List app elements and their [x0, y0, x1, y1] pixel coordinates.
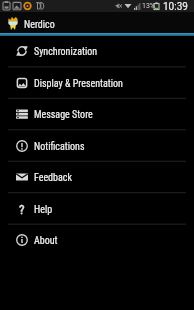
staticText: Synchronization	[34, 46, 98, 58]
staticText: ?	[19, 202, 25, 217]
button[interactable]: Message Store	[0, 98, 194, 129]
button[interactable]: ?	[0, 193, 194, 224]
staticText: Feedback	[34, 172, 72, 184]
staticText: About	[34, 235, 58, 247]
button[interactable]: About	[0, 224, 194, 255]
staticText: Notifications	[34, 141, 85, 153]
staticText: Nerdico	[24, 19, 55, 31]
button[interactable]: Notifications	[0, 130, 194, 161]
button[interactable]: Feedback	[0, 161, 194, 192]
staticText: Message Store	[34, 109, 93, 121]
button[interactable]: Display & Presentation	[0, 67, 194, 98]
other: App logo	[8, 16, 18, 30]
button[interactable]: App logo	[0, 12, 194, 33]
staticText: Help	[34, 204, 53, 216]
staticText: Display & Presentation	[34, 78, 123, 90]
button[interactable]: Synchronization	[0, 35, 194, 66]
staticText: 13%	[142, 2, 155, 10]
staticText: 10:39	[163, 1, 188, 13]
